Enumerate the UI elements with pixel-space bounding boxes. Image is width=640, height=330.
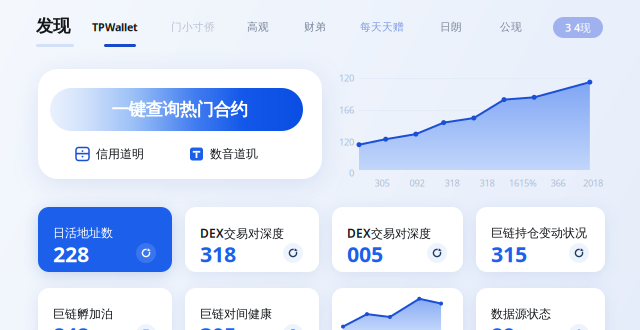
staticText: 0 [349,167,354,179]
button[interactable]: 一键查询热门合约 [50,88,303,131]
staticText: 发现 [36,15,70,37]
staticText: 366 [550,177,565,189]
staticText: 092 [409,177,424,189]
staticText: 318 [444,177,459,189]
staticText: 日朗 [440,20,462,33]
button[interactable]: 高观 [247,18,275,36]
staticText: 公现 [500,20,522,33]
button[interactable]: 数据源状态 [476,288,605,330]
staticText: 1615% [509,177,537,189]
button[interactable]: Trend chart [332,288,463,330]
staticText: 89 [491,321,515,330]
staticText: 数据源状态 [491,307,551,321]
button[interactable]: 公现 [500,18,528,36]
staticText: 005 [347,240,383,268]
staticText: 305 [374,177,389,189]
button[interactable]: 巨链对间健康 [185,288,319,330]
staticText: 财弟 [304,20,326,33]
staticText: 848 [53,321,89,330]
staticText: 数音道玑 [210,147,258,161]
staticText: 318 [200,240,236,268]
staticText: 318 [479,177,494,189]
button[interactable]: 3 4现 [553,17,603,38]
staticText: 一键查询热门合约 [111,99,247,120]
button[interactable]: 门小寸侨 [171,18,219,36]
staticText: TPWallet [92,20,138,34]
staticText: 166 [339,104,354,116]
staticText: DEX交易对深度 [200,225,284,241]
staticText: 高观 [247,20,269,33]
staticText: DEX交易对深度 [347,225,431,241]
button[interactable]: 数音道玑 [190,145,282,163]
button[interactable]: 日活地址数 [38,207,172,272]
button[interactable]: 日朗 [440,18,468,36]
staticText: 每天天赠 [360,20,404,33]
button[interactable]: DEX交易对深度 [332,207,463,272]
button[interactable]: 每天天赠 [360,18,408,36]
staticText: 日活地址数 [53,226,113,240]
button[interactable]: DEX交易对深度 [185,207,319,272]
button[interactable]: 信用道明 [76,145,168,163]
staticText: 2018 [583,177,603,189]
staticText: 3 4现 [565,20,591,35]
staticText: 315 [491,240,527,268]
staticText: 巨链对间健康 [200,307,272,321]
staticText: 巨链持仓变动状况 [491,226,587,240]
button[interactable]: 财弟 [304,18,332,36]
staticText: 门小寸侨 [171,20,215,33]
staticText: 228 [53,240,89,268]
staticText: 305 [200,321,236,330]
staticText: 信用道明 [96,147,144,161]
staticText: 120 [339,72,354,84]
button[interactable]: 巨链持仓变动状况 [476,207,605,272]
button[interactable]: TPWallet [92,18,146,36]
staticText: 120 [339,136,354,148]
staticText: 巨链孵加泊 [53,307,113,321]
button[interactable]: 巨链孵加泊 [38,288,172,330]
